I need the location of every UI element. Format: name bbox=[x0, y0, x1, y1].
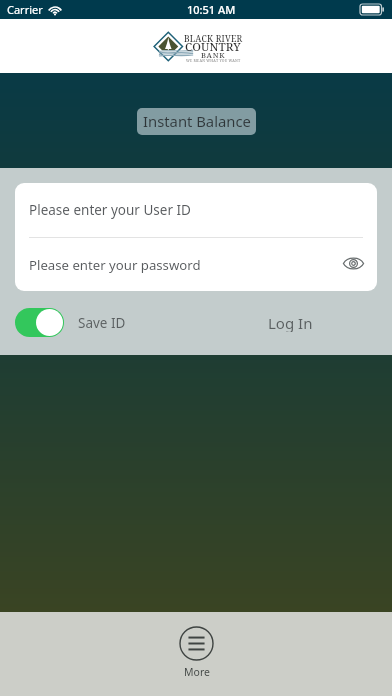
staticText: Save ID bbox=[78, 314, 126, 332]
staticText: WE MEAN WHAT YOU WANT bbox=[186, 58, 241, 63]
button[interactable]: Please enter your User ID bbox=[15, 183, 377, 237]
staticText: BLACK RIVER bbox=[184, 33, 243, 45]
button[interactable]: Save ID toggle bbox=[15, 308, 64, 337]
staticText: Log In bbox=[268, 313, 313, 332]
button[interactable]: More bbox=[163, 624, 230, 681]
staticText: 10:51 AM bbox=[187, 2, 236, 17]
staticText: Instant Balance bbox=[143, 111, 251, 131]
staticText: BANK bbox=[201, 50, 226, 60]
staticText: Carrier bbox=[7, 2, 43, 17]
staticText: Please enter your password bbox=[29, 256, 201, 274]
staticText: More bbox=[184, 665, 210, 679]
staticText: COUNTRY bbox=[185, 39, 241, 55]
button[interactable]: Log In bbox=[252, 308, 329, 337]
staticText: Please enter your User ID bbox=[29, 201, 191, 219]
button[interactable]: Please enter your password bbox=[15, 238, 377, 291]
button[interactable]: Show password bbox=[340, 250, 366, 276]
button[interactable]: Instant Balance bbox=[137, 108, 256, 135]
